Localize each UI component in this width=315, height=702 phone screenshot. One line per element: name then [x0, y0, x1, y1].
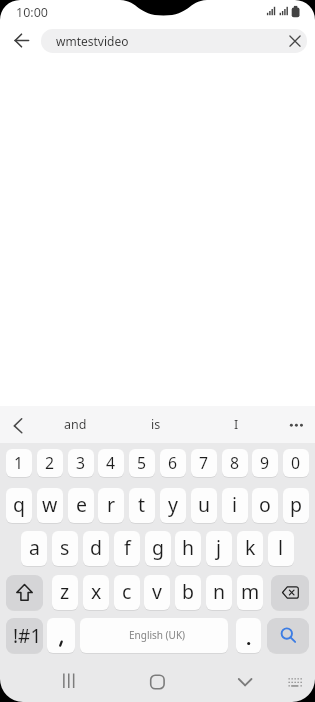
button[interactable]: c [114, 575, 140, 610]
staticText: e [76, 491, 87, 518]
button[interactable]: !#1 [6, 618, 43, 653]
button[interactable]: is [121, 406, 191, 443]
button[interactable]: s [52, 531, 78, 566]
button[interactable]: u [191, 488, 217, 523]
staticText: s [60, 534, 70, 561]
staticText: c [122, 578, 132, 605]
button[interactable] [6, 575, 43, 610]
button[interactable]: 9 [252, 449, 278, 477]
staticText: o [259, 491, 271, 518]
button[interactable]: 3 [68, 449, 94, 477]
button[interactable] [8, 26, 36, 54]
staticText: x [91, 578, 102, 605]
button[interactable]: n [206, 575, 232, 610]
staticText: m [241, 578, 260, 605]
staticText: t [138, 491, 146, 518]
button[interactable]: e [68, 488, 94, 523]
staticText: b [182, 578, 194, 605]
button[interactable] [283, 29, 307, 53]
staticText: 10:00 [16, 4, 48, 21]
button[interactable] [47, 618, 75, 653]
button[interactable]: p [283, 488, 309, 523]
button[interactable]: 1 [6, 449, 32, 477]
staticText: and [64, 416, 87, 433]
staticText: q [13, 491, 25, 518]
button[interactable]: 4 [98, 449, 124, 477]
staticText: 3 [76, 452, 86, 474]
button[interactable]: and [40, 406, 110, 443]
staticText: a [29, 534, 40, 561]
staticText: 8 [230, 452, 240, 474]
staticText: is [151, 416, 161, 433]
button[interactable]: j [206, 531, 232, 566]
button[interactable] [142, 666, 172, 696]
button[interactable] [278, 406, 308, 443]
staticText: l [278, 534, 284, 561]
button[interactable]: f [114, 531, 140, 566]
staticText: 5 [137, 452, 147, 474]
staticText: 6 [168, 452, 178, 474]
staticText: p [290, 491, 302, 518]
button[interactable]: q [6, 488, 32, 523]
button[interactable]: I [201, 406, 271, 443]
staticText: n [213, 578, 226, 605]
staticText: j [216, 534, 222, 561]
button[interactable] [267, 618, 309, 653]
button[interactable] [271, 575, 309, 610]
button[interactable]: d [83, 531, 109, 566]
button[interactable]: English (UK) [80, 618, 228, 653]
button[interactable]: wmtestvideo [41, 29, 307, 53]
button[interactable]: k [237, 531, 263, 566]
button[interactable]: 7 [191, 449, 217, 477]
staticText: English (UK) [129, 628, 186, 642]
button[interactable] [54, 666, 84, 696]
button[interactable]: t [129, 488, 155, 523]
staticText: f [124, 534, 131, 561]
staticText: !#1 [13, 623, 42, 649]
button[interactable]: o [252, 488, 278, 523]
button[interactable]: 8 [222, 449, 248, 477]
button[interactable]: x [83, 575, 109, 610]
staticText: z [60, 578, 70, 605]
staticText: 7 [199, 452, 209, 474]
button[interactable] [282, 670, 306, 694]
staticText: v [152, 578, 162, 605]
button[interactable]: a [21, 531, 47, 566]
staticText: k [245, 534, 256, 561]
button[interactable] [2, 406, 30, 443]
staticText: wmtestvideo [56, 33, 129, 49]
staticText: I [234, 416, 239, 433]
button[interactable]: g [145, 531, 171, 566]
button[interactable]: l [268, 531, 294, 566]
button[interactable]: r [98, 488, 124, 523]
staticText: r [107, 491, 116, 518]
button[interactable]: 2 [37, 449, 63, 477]
staticText: 1 [14, 452, 24, 474]
staticText: 9 [260, 452, 270, 474]
staticText: h [182, 534, 195, 561]
button[interactable]: y [160, 488, 186, 523]
staticText: u [198, 491, 211, 518]
staticText: g [152, 534, 164, 561]
button[interactable]: z [52, 575, 78, 610]
staticText: 2 [45, 452, 55, 474]
button[interactable]: m [237, 575, 263, 610]
button[interactable] [236, 618, 261, 653]
staticText: 4 [106, 452, 116, 474]
button[interactable]: 0 [283, 449, 309, 477]
staticText: i [232, 491, 238, 518]
staticText: 0 [291, 452, 301, 474]
staticText: d [90, 534, 102, 561]
button[interactable]: i [222, 488, 248, 523]
button[interactable] [230, 666, 260, 696]
button[interactable]: 5 [129, 449, 155, 477]
button[interactable]: 6 [160, 449, 186, 477]
button[interactable]: h [175, 531, 201, 566]
button[interactable]: b [175, 575, 201, 610]
button[interactable]: w [37, 488, 63, 523]
button[interactable]: v [144, 575, 170, 610]
staticText: w [42, 491, 58, 518]
staticText: y [168, 491, 178, 518]
